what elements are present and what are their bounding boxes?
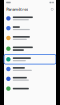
button[interactable]: [4, 74, 56, 84]
button[interactable]: [4, 43, 56, 54]
button[interactable]: [4, 23, 56, 33]
button[interactable]: Rechercher: [50, 7, 54, 11]
button[interactable]: [4, 13, 56, 23]
button[interactable]: [4, 64, 56, 74]
button[interactable]: [4, 33, 56, 43]
button[interactable]: [4, 54, 56, 64]
staticText: Paramètres: [6, 7, 28, 12]
button[interactable]: [4, 84, 56, 93]
